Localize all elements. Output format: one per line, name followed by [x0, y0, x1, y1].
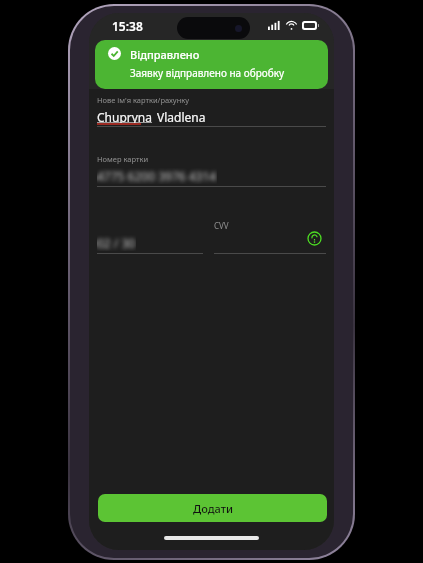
staticText: Vladlena	[157, 109, 206, 125]
staticText: CVV	[214, 220, 229, 231]
button[interactable]: CVV help	[305, 229, 323, 247]
staticText: Номер картки	[97, 154, 149, 164]
button[interactable]: Відправлено	[95, 40, 328, 89]
staticText: 02 / 30	[97, 235, 136, 251]
staticText: Нове ім'я картки/рахунку	[97, 95, 190, 105]
staticText: Заявку відправлено на обробку	[130, 66, 285, 80]
staticText: 15:38	[112, 18, 143, 34]
staticText: Додати	[193, 501, 233, 516]
staticText: Відправлено	[130, 47, 200, 62]
button[interactable]: Додати	[98, 494, 327, 522]
staticText: Chupryna	[97, 109, 153, 125]
staticText: 4775 6200 3976 4314	[97, 168, 217, 184]
